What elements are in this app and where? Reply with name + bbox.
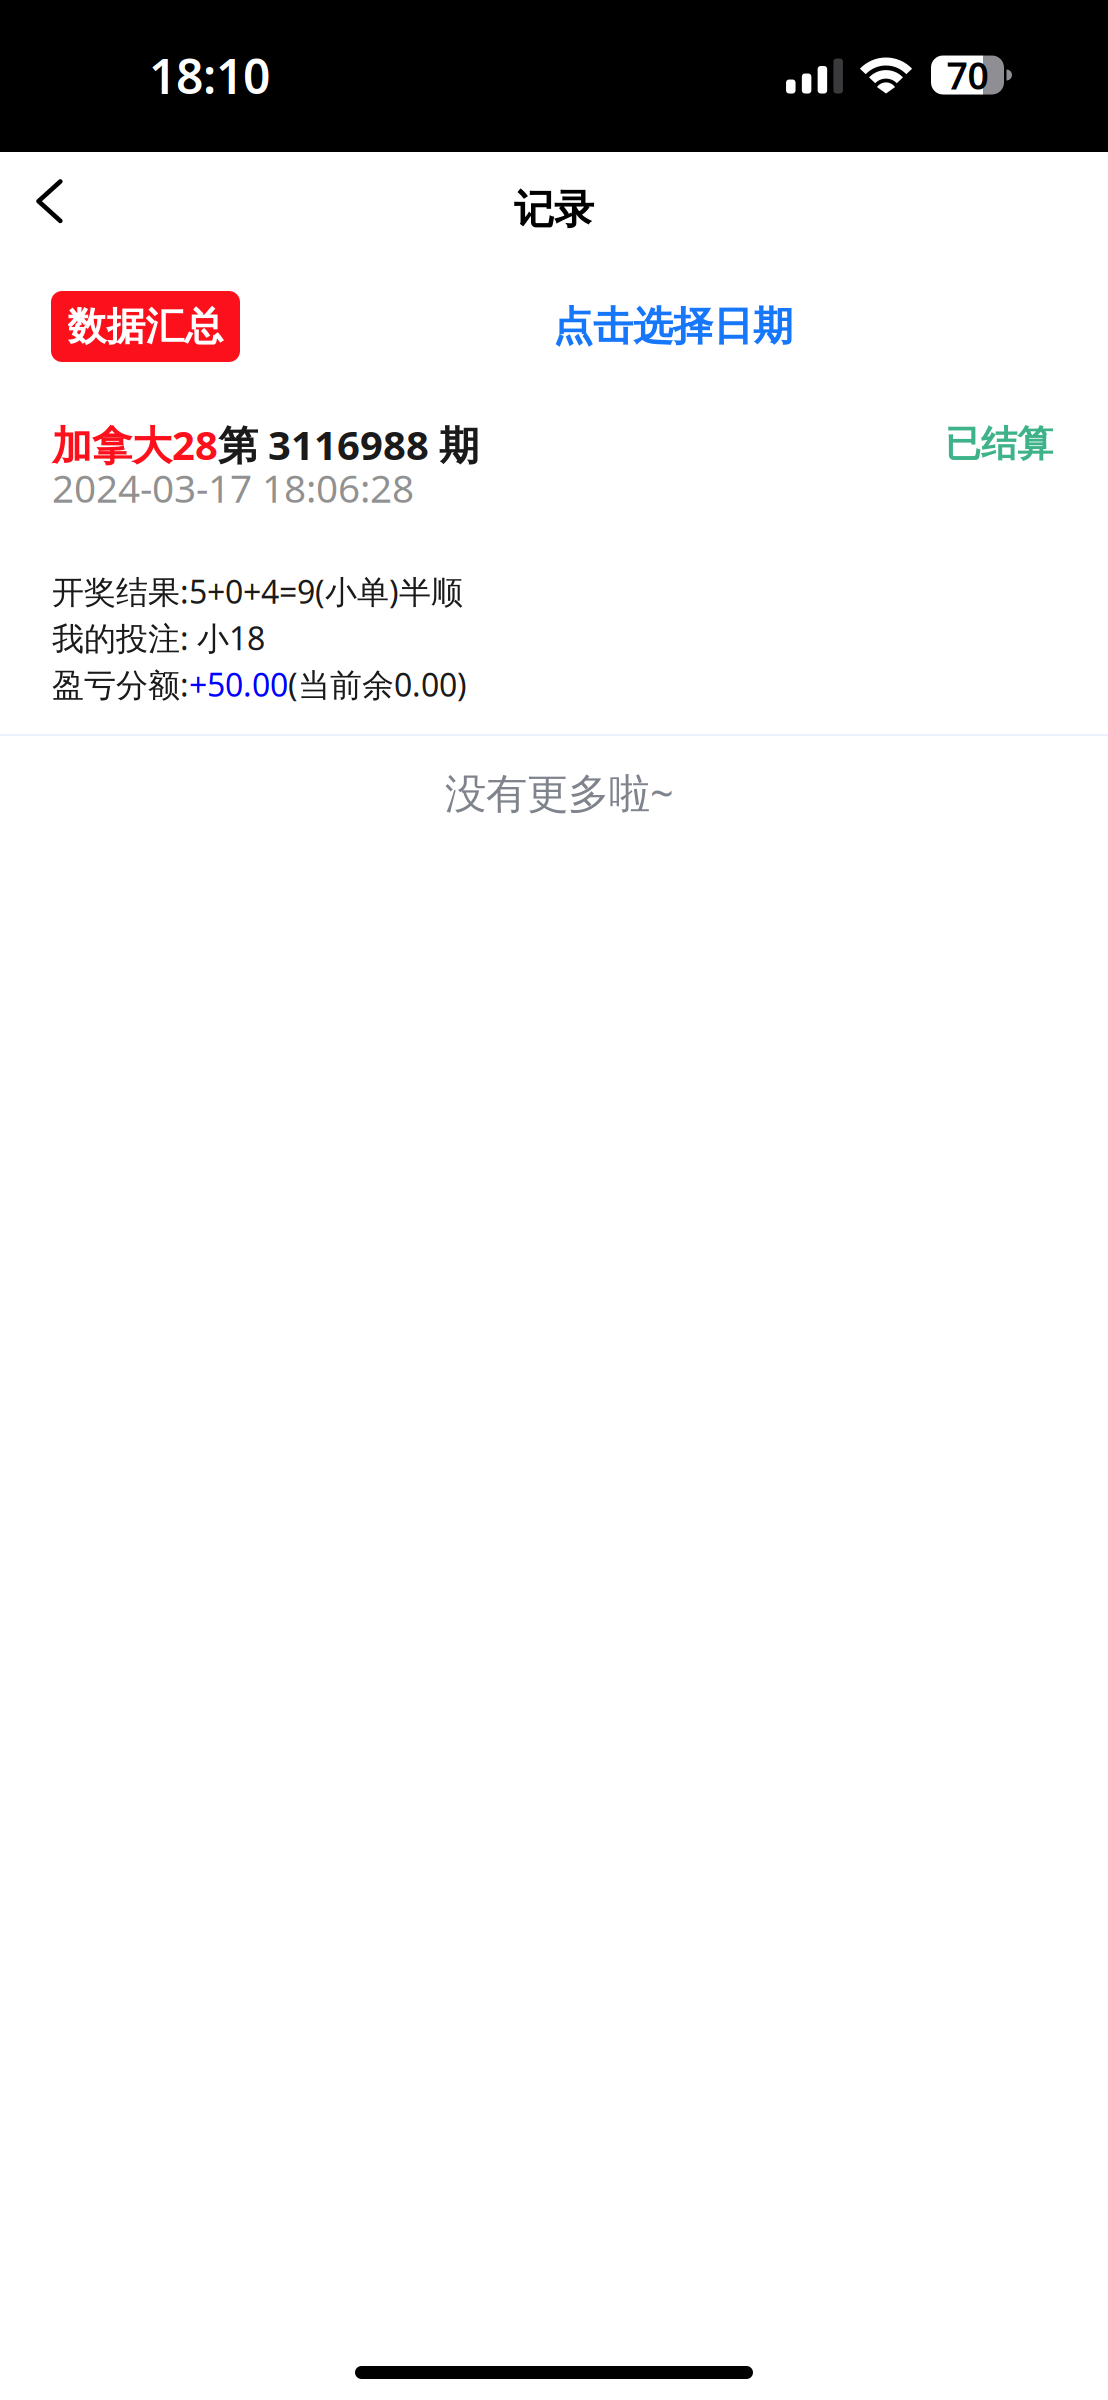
staticText: +50.00: [189, 663, 288, 705]
staticText: (当前余0.00): [288, 663, 467, 705]
button[interactable]: 加拿大28: [0, 362, 1108, 734]
staticText: 没有更多啦~: [445, 765, 674, 820]
staticText: 盈亏分额:: [52, 663, 189, 705]
staticText: 开奖结果:5+0+4=9(小单)半顺: [52, 570, 463, 612]
staticText: 18:10: [149, 44, 270, 107]
staticText: 数据汇总: [67, 303, 223, 350]
staticText: 第 3116988 期: [218, 418, 479, 471]
button[interactable]: 点击选择日期: [553, 291, 793, 362]
staticText: 已结算: [945, 422, 1053, 466]
staticText: 70: [946, 50, 988, 100]
staticText: 点击选择日期: [553, 302, 793, 351]
staticText: 加拿大28: [52, 418, 218, 471]
staticText: 2024-03-17 18:06:28: [52, 462, 414, 513]
staticText: 我的投注: 小18: [52, 616, 265, 659]
button[interactable]: Back: [0, 152, 95, 246]
staticText: 记录: [514, 185, 594, 234]
button[interactable]: 数据汇总: [51, 291, 240, 362]
